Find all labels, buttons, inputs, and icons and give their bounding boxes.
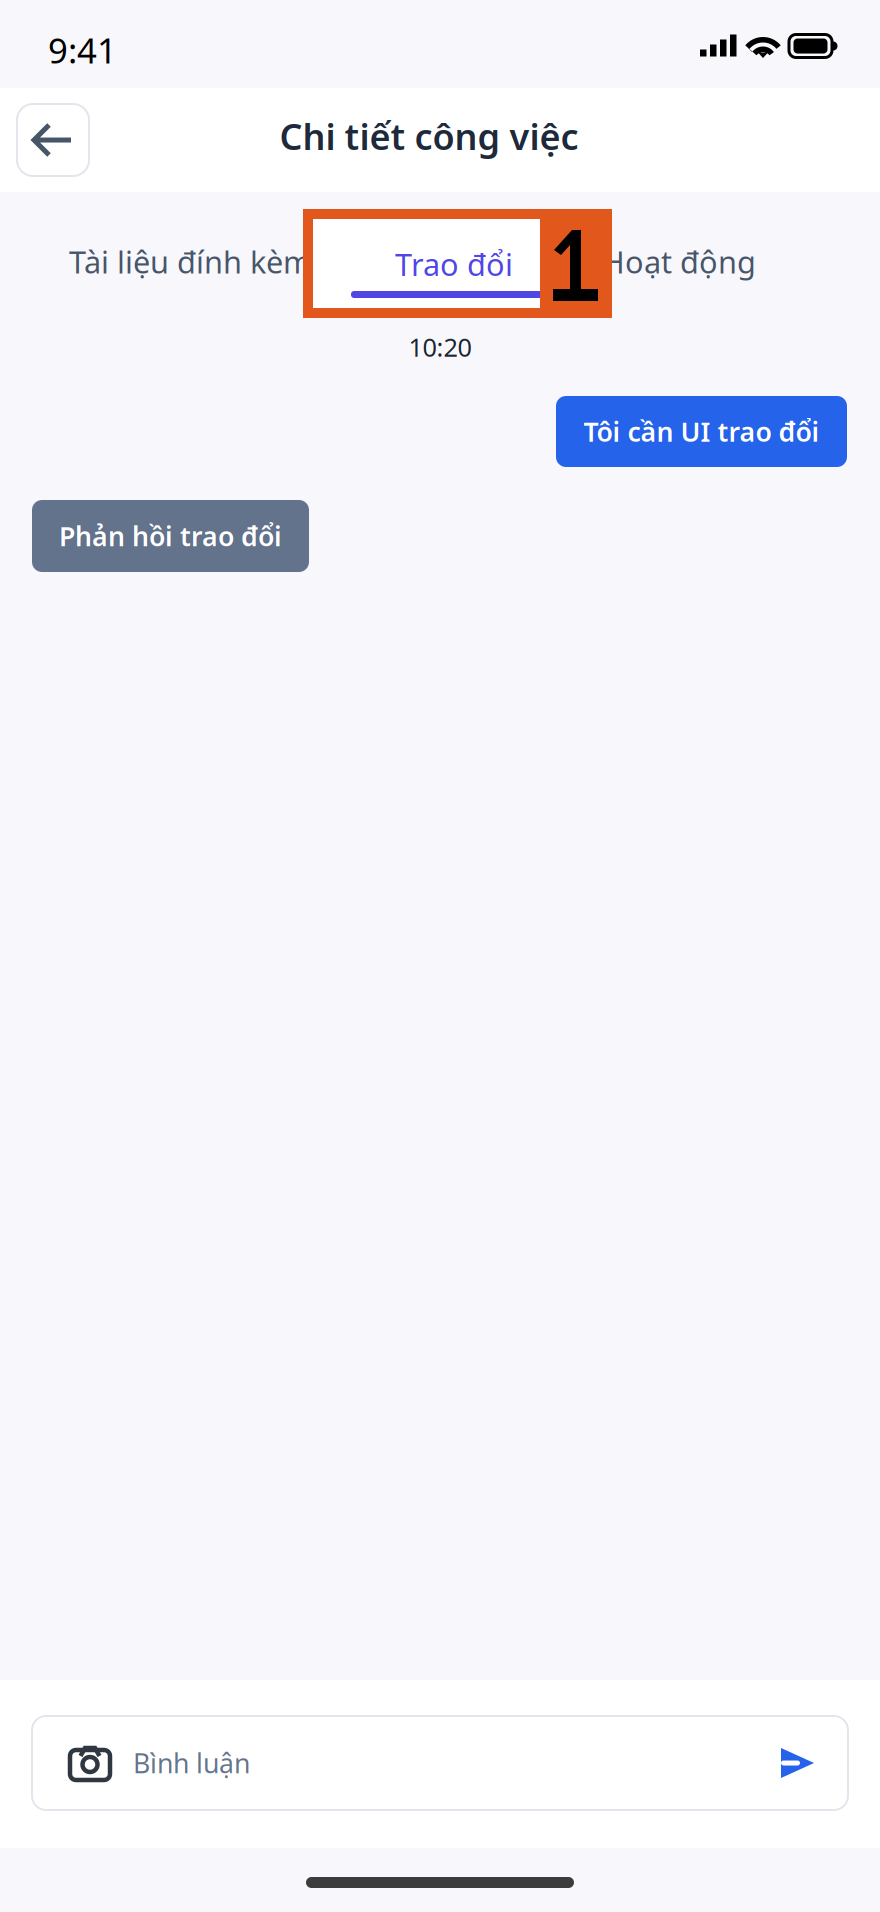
- button[interactable]: Add photo: [52, 1716, 128, 1810]
- staticText: 10:20: [408, 330, 471, 364]
- button[interactable]: Hoạt động: [589, 223, 769, 299]
- button[interactable]: Trao đổi: [319, 220, 589, 303]
- staticText: Bình luận: [133, 1745, 250, 1781]
- staticText: Hoạt động: [602, 241, 756, 282]
- staticText: Phản hồi trao đổi: [59, 518, 282, 554]
- button[interactable]: Tài liệu đính kèm: [62, 223, 319, 299]
- staticText: Trao đổi: [395, 244, 513, 284]
- button[interactable]: Back: [17, 104, 89, 176]
- staticText: Tài liệu đính kèm: [69, 241, 312, 282]
- button[interactable]: Send: [762, 1716, 832, 1810]
- staticText: Chi tiết công việc: [279, 112, 578, 160]
- staticText: Tôi cần UI trao đổi: [583, 414, 819, 449]
- staticText: 9:41: [48, 27, 117, 73]
